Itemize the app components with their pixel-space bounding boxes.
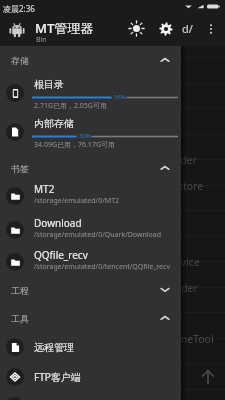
button[interactable]: QQfile_recv <box>0 246 181 278</box>
button[interactable]: FTP客户端 <box>0 363 181 391</box>
staticText: 30% <box>79 132 91 140</box>
button[interactable]: Settings <box>158 21 174 37</box>
staticText: d/ <box>182 21 193 36</box>
staticText: FTP客户端 <box>34 370 81 384</box>
staticText: MT管理器 <box>35 19 94 37</box>
staticText: 根目录 <box>34 78 64 91</box>
staticText: Download <box>34 216 82 230</box>
staticText: /storage/emulated/0/MT2 <box>34 196 120 206</box>
button[interactable]: App icon <box>9 22 25 38</box>
button[interactable]: MT2 <box>0 180 181 212</box>
staticText: QQfile_recv <box>34 248 88 262</box>
staticText: 工程 <box>11 285 29 296</box>
button[interactable]: Download <box>0 214 181 246</box>
staticText: Bin <box>36 35 47 45</box>
button[interactable]: Scroll to top <box>197 366 219 388</box>
button[interactable]: 工具 <box>0 307 181 329</box>
button[interactable]: More options <box>203 21 219 37</box>
staticText: 工具 <box>11 313 29 324</box>
button[interactable]: 根目录 <box>0 74 181 112</box>
staticText: MediaRestore <box>135 179 204 193</box>
staticText: /storage/emulated/0/tencent/QQfile_recv <box>34 262 170 272</box>
button[interactable]: 工程 <box>0 279 181 301</box>
button[interactable]: 存储 <box>0 49 181 71</box>
staticText: 内部存储 <box>34 117 74 130</box>
staticText: 远程管理 <box>34 341 74 354</box>
staticText: 凌晨2:36 <box>3 3 35 14</box>
staticText: /storage/emulated/0/Quark/Download <box>34 230 162 240</box>
staticText: 34.09G已用，76.17G可用 <box>34 140 115 150</box>
button[interactable]: 书签 <box>0 157 181 179</box>
staticText: 56% <box>114 93 126 101</box>
staticText: ContentProvider <box>116 153 197 167</box>
staticText: ContentProvider <box>117 281 198 295</box>
staticText: 2.71G已用，2.05G可用 <box>34 101 107 111</box>
button[interactable]: 远程管理 <box>0 333 181 361</box>
staticText: CommandLineTool <box>121 332 214 346</box>
button[interactable]: Brightness <box>128 20 145 37</box>
staticText: 存储 <box>11 55 29 66</box>
staticText: TelephonyService <box>114 255 200 269</box>
staticText: 书签 <box>11 163 29 174</box>
staticText: MT2 <box>34 182 55 196</box>
button[interactable]: 内部存储 <box>0 113 181 151</box>
